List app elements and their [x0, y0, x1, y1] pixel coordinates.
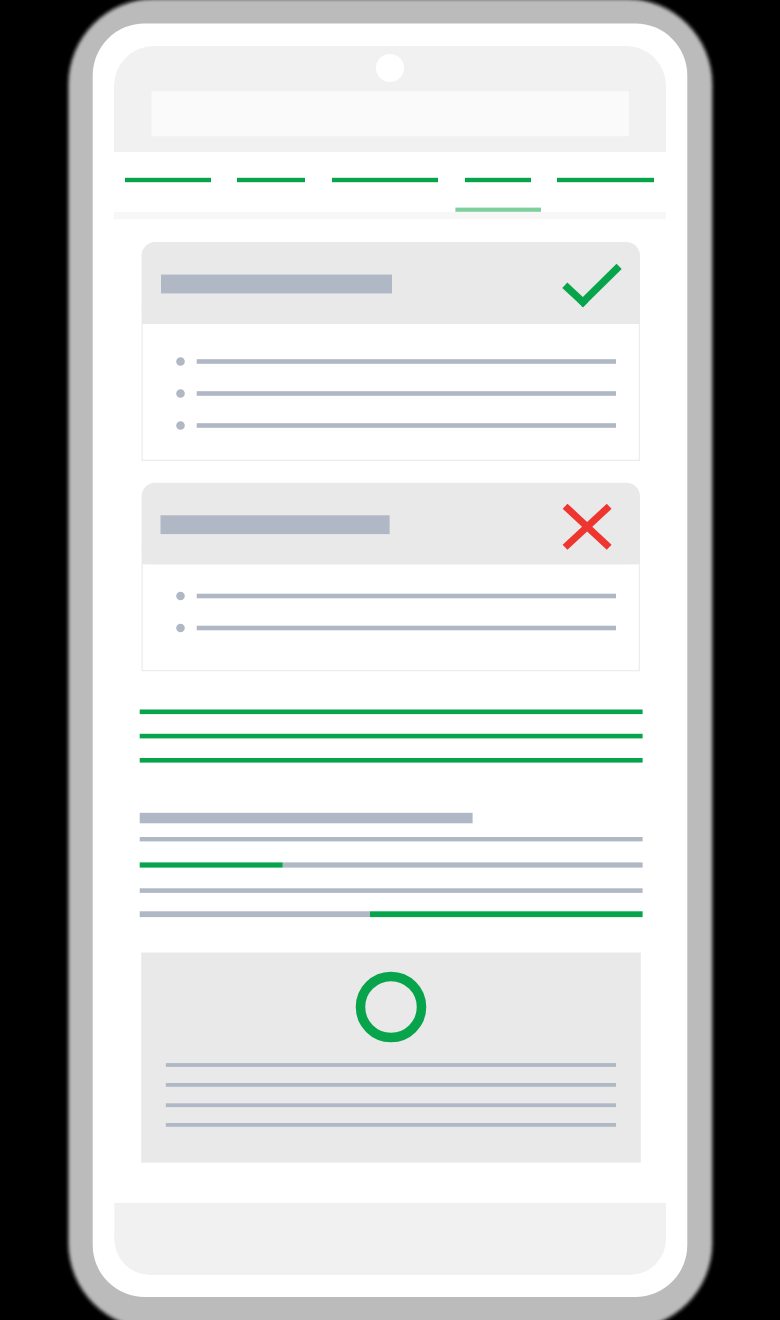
button[interactable]: Tasks tab	[328, 163, 441, 213]
button[interactable]: Failed checks card	[141, 483, 640, 672]
button[interactable]: Progress panel	[141, 952, 641, 1163]
button[interactable]: Report tab	[441, 163, 554, 213]
button[interactable]: Summary details	[140, 700, 643, 925]
button[interactable]: Overview tab	[114, 163, 224, 213]
button[interactable]: Passed checks card	[141, 242, 640, 461]
button[interactable]: Details tab	[224, 163, 328, 213]
button[interactable]: More tab	[554, 163, 666, 213]
